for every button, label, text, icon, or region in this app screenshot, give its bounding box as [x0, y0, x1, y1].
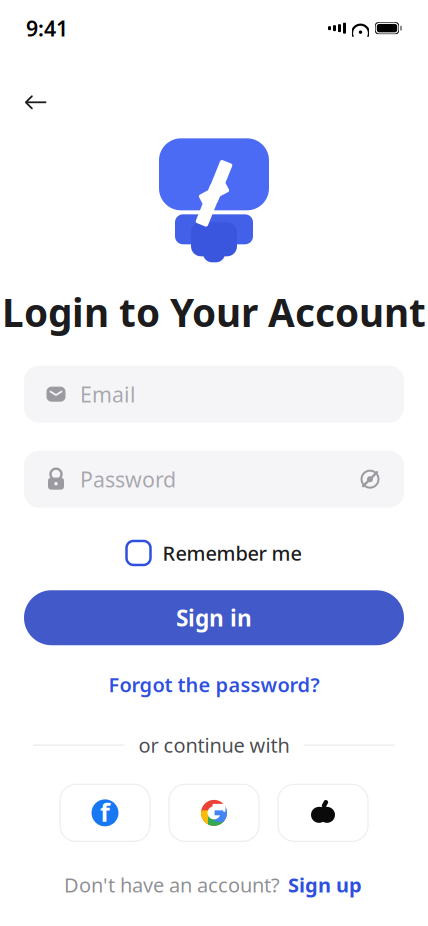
staticText: Password [80, 465, 176, 493]
staticText: Remember me [162, 540, 301, 566]
button[interactable]: Sign up [286, 867, 364, 902]
staticText: or continue with [138, 732, 289, 758]
button[interactable]: Sign in with Facebook [60, 784, 150, 841]
button[interactable]: Forgot the password? [98, 663, 329, 706]
staticText: Sign up [288, 871, 362, 898]
button[interactable]: Sign in with Google [169, 784, 259, 841]
staticText: Don't have an account? [64, 871, 280, 898]
staticText: Sign in [176, 603, 252, 633]
staticText: 9:41 [26, 14, 68, 42]
button[interactable]: Show password [358, 467, 382, 491]
button[interactable]: Sign in with Apple [278, 784, 368, 841]
button[interactable]: Remember me [122, 532, 305, 574]
button[interactable]: Back [14, 80, 58, 124]
staticText: Email [80, 380, 136, 408]
staticText: f [100, 795, 110, 829]
button[interactable]: Sign in [24, 590, 404, 645]
staticText: Forgot the password? [108, 671, 319, 698]
staticText: Login to Your Account [2, 286, 426, 338]
